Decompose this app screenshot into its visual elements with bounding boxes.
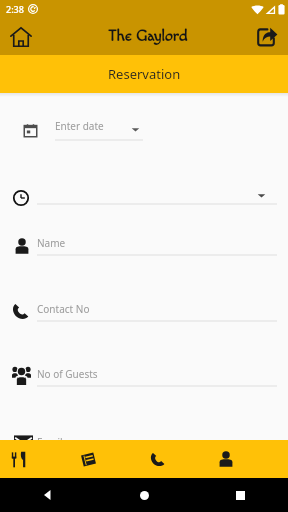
button[interactable]: Call: [133, 440, 181, 478]
staticText: Reservation: [108, 65, 181, 83]
staticText: Enter date: [55, 119, 104, 133]
staticText: The Gaylord: [108, 27, 188, 46]
button[interactable]: Restaurant: [0, 440, 43, 478]
button[interactable]: Enter date: [55, 115, 143, 141]
button[interactable]: Email: [37, 430, 277, 455]
button[interactable]: Contact No: [37, 297, 277, 322]
button[interactable]: Share: [252, 22, 282, 52]
staticText: Contact No: [37, 302, 90, 316]
staticText: 2:38: [6, 3, 24, 15]
staticText: Email: [37, 435, 63, 449]
button[interactable]: Menu: [64, 440, 112, 478]
staticText: No of Guests: [37, 367, 98, 381]
button[interactable]: [37, 188, 277, 205]
staticText: Name: [37, 236, 66, 250]
button[interactable]: No of Guests: [37, 362, 277, 387]
button[interactable]: Profile: [202, 440, 250, 478]
button[interactable]: Name: [37, 231, 277, 256]
button[interactable]: Home: [5, 21, 37, 53]
